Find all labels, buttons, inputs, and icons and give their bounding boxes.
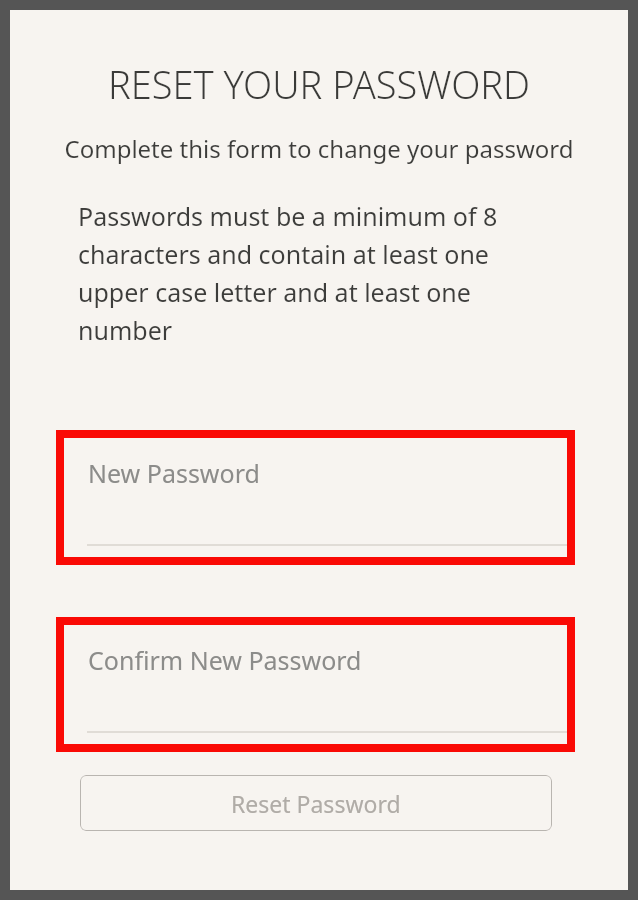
staticText: Reset Password [231, 788, 401, 819]
staticText: RESET YOUR PASSWORD [10, 58, 628, 110]
button[interactable]: Reset Password [80, 775, 552, 831]
staticText: Confirm New Password [88, 643, 362, 677]
button[interactable]: Confirm New Password [56, 617, 575, 752]
staticText: Passwords must be a minimum of 8 charact… [78, 199, 508, 347]
button[interactable]: New Password [56, 430, 575, 565]
staticText: Complete this form to change your passwo… [10, 132, 628, 165]
staticText: New Password [88, 456, 260, 490]
